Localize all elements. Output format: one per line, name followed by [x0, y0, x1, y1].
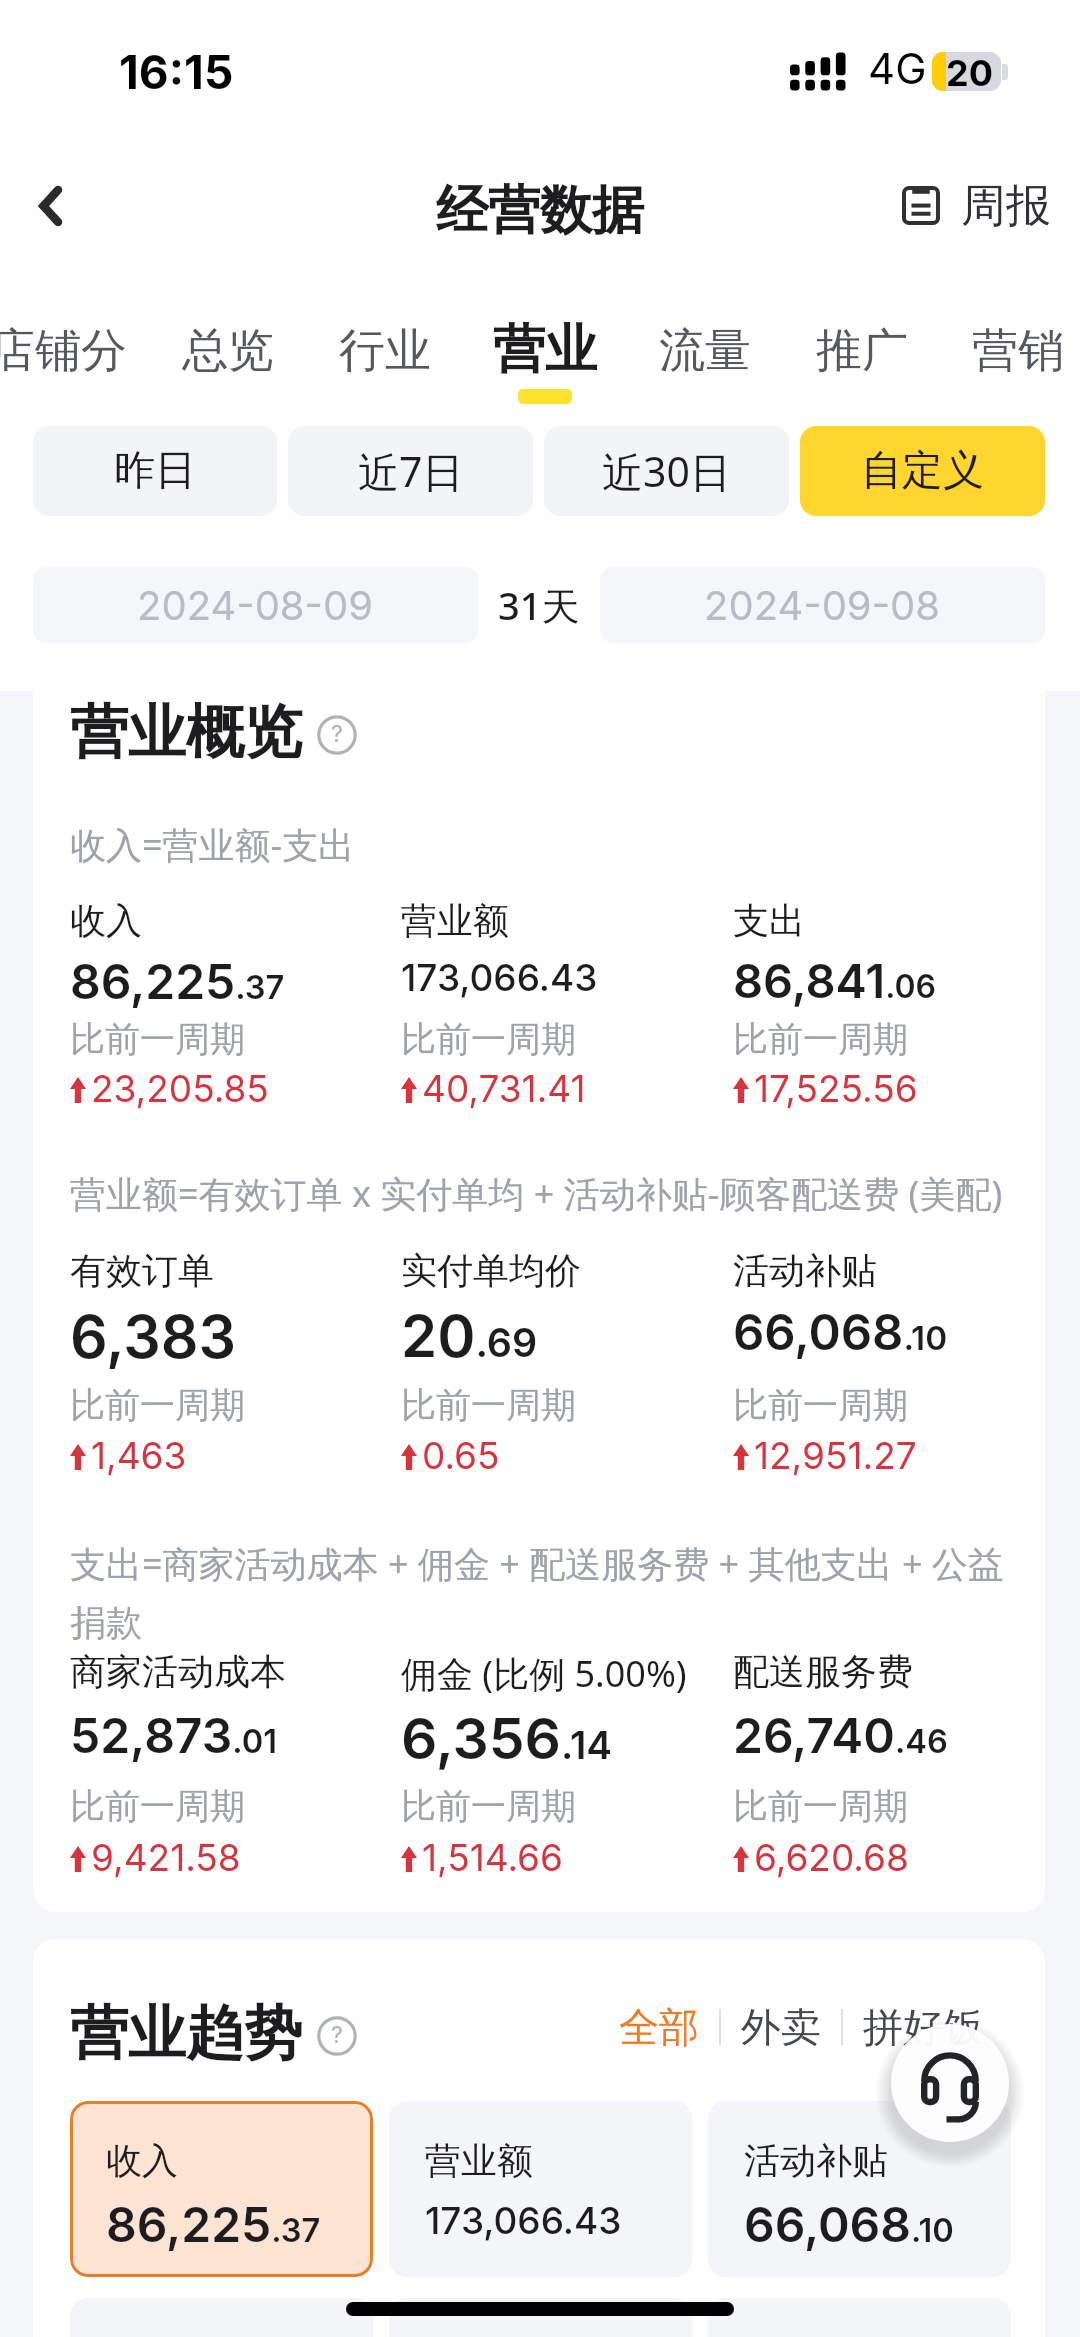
staticText: 近30日	[602, 443, 731, 499]
button[interactable]: 营业额	[389, 2101, 692, 2277]
staticText: ?	[331, 720, 343, 748]
staticText: 86,841.06	[733, 952, 937, 1009]
button[interactable]: 店铺分	[0, 300, 146, 408]
button[interactable]: 营业	[457, 300, 633, 408]
staticText: 20	[946, 51, 993, 90]
staticText: 12,951.27	[754, 1433, 917, 1478]
button[interactable]: 总览	[140, 300, 316, 408]
staticText: 比前一周期	[70, 1784, 245, 1828]
staticText: 收入	[70, 898, 142, 943]
staticText: 有效订单	[70, 1248, 214, 1293]
staticText: 2024-09-08	[704, 581, 941, 629]
staticText: 营业额=有效订单 x 实付单均 + 活动补贴-顾客配送费 (美配)	[70, 1169, 1003, 1218]
staticText: 实付单均价	[401, 1248, 581, 1293]
staticText: 全部	[619, 2002, 699, 2052]
button[interactable]: 商家活动成本	[708, 2298, 1011, 2337]
button[interactable]: 近30日	[544, 426, 789, 516]
staticText: 比前一周期	[70, 1383, 245, 1427]
staticText: 1,463	[91, 1433, 187, 1478]
staticText: 佣金 (比例 5.00%)	[401, 1649, 687, 1698]
staticText: 16:15	[119, 44, 234, 100]
staticText: 比前一周期	[733, 1383, 908, 1427]
button[interactable]: 活动补贴	[708, 2101, 1011, 2277]
staticText: 收入=营业额-支出	[70, 820, 355, 869]
staticText: 0.65	[422, 1433, 500, 1478]
staticText: 20.69	[401, 1301, 538, 1371]
staticText: 23,205.85	[91, 1066, 269, 1111]
button[interactable]: 周报	[892, 166, 1061, 244]
button[interactable]: 行业	[297, 300, 473, 408]
staticText: 1,514.66	[422, 1835, 563, 1880]
staticText: 外卖	[741, 2002, 821, 2052]
staticText: 26,740.46	[733, 1706, 948, 1764]
staticText: 自定义	[861, 445, 984, 497]
staticText: 173,066.43	[401, 955, 598, 1000]
staticText: 活动补贴	[733, 1248, 877, 1293]
staticText: 86,225.37	[70, 952, 285, 1010]
button[interactable]: 有效订单	[70, 2298, 373, 2337]
button[interactable]: 2024-09-08	[600, 567, 1045, 643]
staticText: 4G	[868, 43, 927, 94]
button[interactable]: 全部	[603, 2002, 715, 2052]
staticText: 活动补贴	[744, 2138, 888, 2183]
button[interactable]: 近7日	[288, 426, 533, 516]
staticText: 昨日	[114, 445, 196, 497]
staticText: 店铺分	[0, 322, 127, 380]
staticText: 推广	[816, 322, 908, 380]
button[interactable]: 2024-08-09	[33, 567, 478, 643]
staticText: 66,068.10	[744, 2195, 954, 2253]
staticText: 66,068.10	[733, 1303, 948, 1362]
staticText: 比前一周期	[70, 1017, 245, 1061]
staticText: ?	[331, 2021, 343, 2049]
staticText: 营业	[493, 317, 597, 383]
button[interactable]: 在线客服	[891, 2024, 1009, 2142]
staticText: 营业趋势	[70, 1997, 302, 2070]
staticText: 拼好饭	[863, 2002, 983, 2052]
staticText: 比前一周期	[733, 1017, 908, 1061]
staticText: 比前一周期	[401, 1784, 576, 1828]
staticText: 收入	[106, 2138, 178, 2183]
button[interactable]: 实付单均价	[389, 2298, 692, 2337]
staticText: 周报	[961, 178, 1051, 235]
staticText: 40,731.41	[422, 1066, 586, 1111]
button[interactable]: 流量	[617, 300, 793, 408]
staticText: 6,356.14	[401, 1704, 613, 1773]
button[interactable]: 自定义	[800, 426, 1045, 516]
staticText: 支出=商家活动成本 + 佣金 + 配送服务费 + 其他支出 + 公益捐款	[70, 1539, 1015, 1646]
staticText: 52,873.01	[70, 1706, 278, 1764]
staticText: 2024-08-09	[137, 581, 374, 629]
button[interactable]: 返回	[0, 156, 100, 256]
staticText: 营业额	[425, 2138, 533, 2183]
staticText: 营业额	[401, 898, 509, 943]
staticText: 总览	[182, 322, 274, 380]
staticText: 9,421.58	[91, 1835, 241, 1880]
staticText: 17,525.56	[754, 1066, 918, 1111]
staticText: 6,620.68	[754, 1835, 909, 1880]
staticText: 173,066.43	[425, 2198, 622, 2243]
staticText: 行业	[339, 322, 431, 380]
button[interactable]: 外卖	[725, 2002, 837, 2052]
staticText: 支出	[733, 898, 805, 943]
staticText: 比前一周期	[733, 1784, 908, 1828]
staticText: 近7日	[358, 443, 464, 499]
staticText: 比前一周期	[401, 1017, 576, 1061]
staticText: 营业概览	[70, 696, 302, 769]
button[interactable]: 拼好饭	[847, 2002, 999, 2052]
staticText: 6,383	[70, 1301, 237, 1372]
staticText: 流量	[659, 322, 751, 380]
staticText: 商家活动成本	[70, 1649, 286, 1694]
staticText: 31天	[498, 579, 580, 631]
staticText: 配送服务费	[733, 1649, 913, 1694]
button[interactable]: 推广	[774, 300, 950, 408]
button[interactable]: 营销	[930, 300, 1080, 408]
button[interactable]: 收入	[70, 2101, 373, 2277]
staticText: 比前一周期	[401, 1383, 576, 1427]
button[interactable]: 昨日	[33, 426, 277, 516]
staticText: 86,225.37	[106, 2195, 321, 2253]
staticText: 营销	[972, 322, 1064, 380]
staticText: 经营数据	[436, 178, 644, 244]
